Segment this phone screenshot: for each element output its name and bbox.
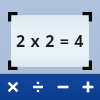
button[interactable]: plus: [75, 74, 100, 100]
staticText: 2 x 2 = 4: [16, 30, 84, 52]
button[interactable]: minus: [50, 74, 75, 100]
button[interactable]: divide: [25, 74, 50, 100]
button[interactable]: multiply: [0, 74, 25, 100]
button[interactable]: Scan math problem: [8, 12, 92, 70]
